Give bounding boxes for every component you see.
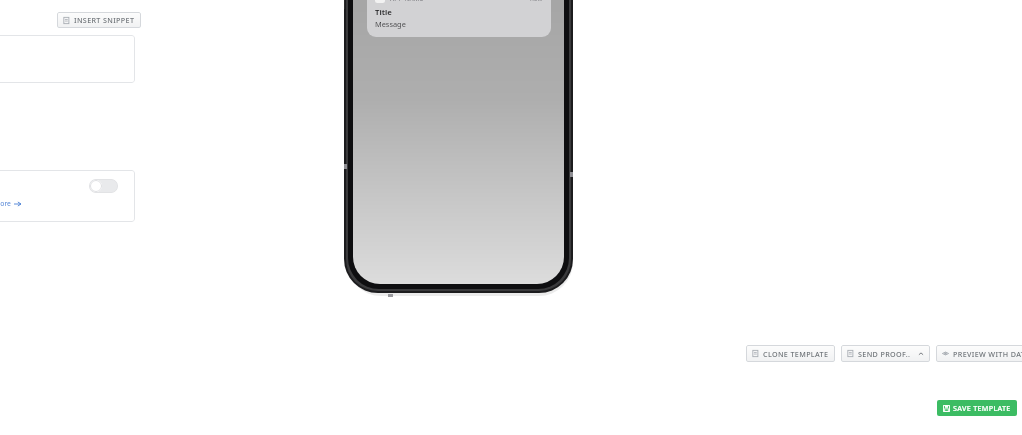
- button[interactable]: PREVIEW WITH DATA..: [936, 345, 1022, 362]
- staticText: INSERT SNIPPET: [74, 15, 135, 25]
- staticText: now: [530, 0, 543, 2]
- button[interactable]: Toggle setting: [89, 179, 118, 193]
- button[interactable]: SAVE TEMPLATE: [937, 400, 1017, 416]
- staticText: SEND PROOF..: [858, 349, 911, 359]
- button[interactable]: n more: [0, 199, 21, 208]
- staticText: Title: [375, 7, 392, 17]
- staticText: PREVIEW WITH DATA..: [953, 349, 1022, 359]
- staticText: n more: [0, 199, 11, 208]
- staticText: APP NAME: [390, 0, 424, 2]
- button[interactable]: [0, 35, 135, 83]
- button[interactable]: CLONE TEMPLATE: [746, 345, 835, 362]
- staticText: Message: [375, 19, 406, 29]
- button[interactable]: APP NAME: [367, 0, 551, 37]
- staticText: SAVE TEMPLATE: [953, 403, 1011, 413]
- staticText: CLONE TEMPLATE: [763, 349, 829, 359]
- button[interactable]: INSERT SNIPPET: [57, 12, 141, 28]
- button[interactable]: SEND PROOF..: [841, 345, 930, 362]
